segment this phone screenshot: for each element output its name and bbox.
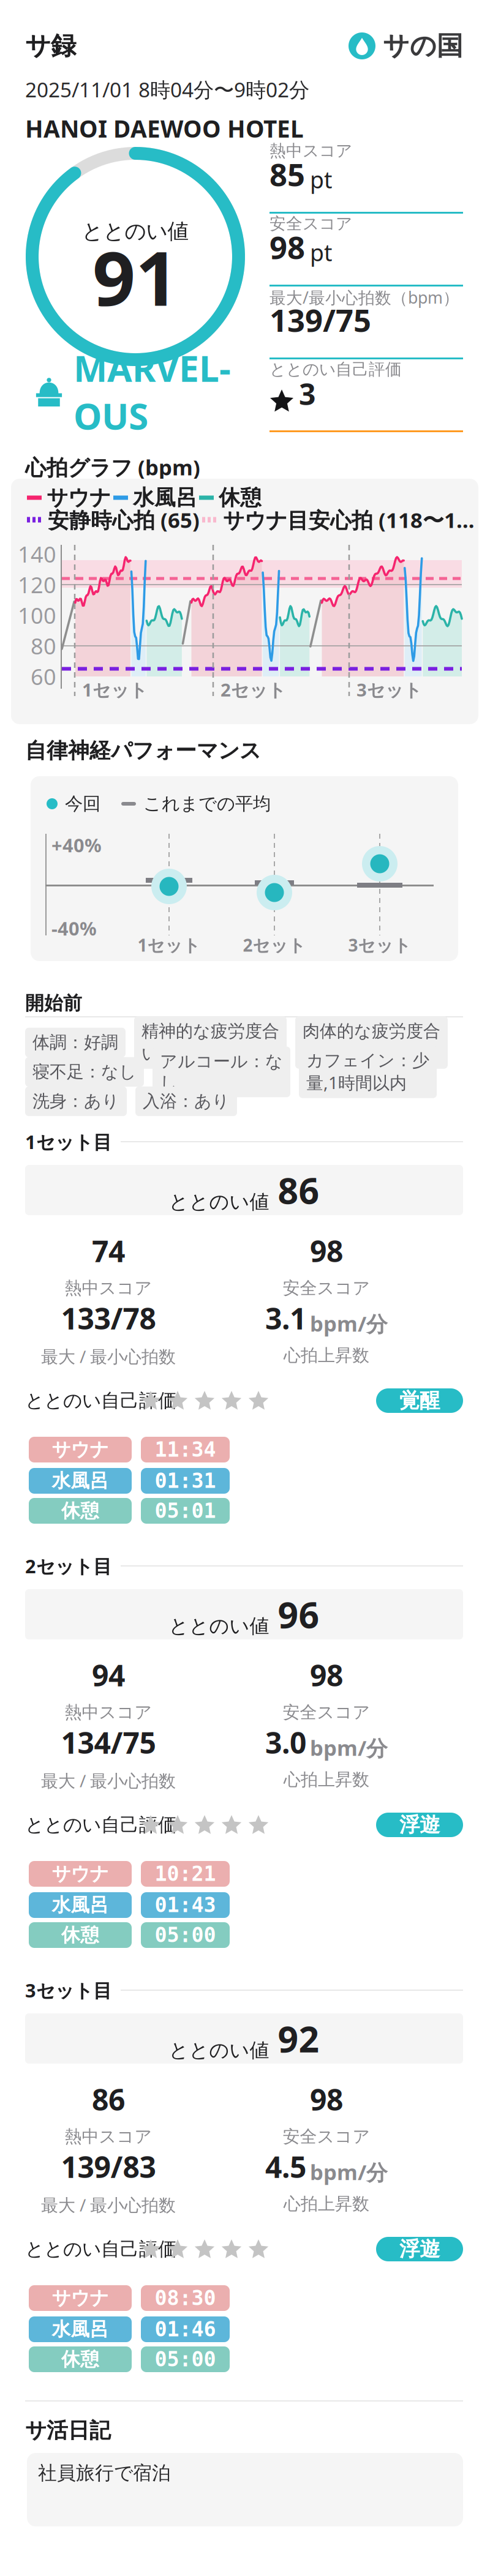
staticText: -40% (51, 916, 97, 941)
staticText: 心拍上昇数 (284, 1345, 369, 1366)
staticText: ととのい値 (169, 2038, 269, 2062)
staticText: 3セット目 (25, 1978, 112, 2003)
staticText: 最大/最小心拍数（bpm） (269, 286, 459, 308)
staticText: サウナ目安心拍 (118〜1… (223, 506, 475, 534)
staticText: 134/75 (61, 1723, 156, 1762)
staticText: ととのい自己評価 (269, 359, 402, 379)
staticText: 最大 / 最小心拍数 (41, 1769, 176, 1792)
staticText: 08:30 (155, 2287, 216, 2310)
staticText: ととのい値 (169, 1614, 269, 1638)
button[interactable]: 浮遊 (376, 1813, 463, 1837)
staticText: 05:00 (155, 2348, 216, 2371)
staticText: 熱中スコア (65, 1702, 152, 1723)
staticText: 安全スコア (269, 214, 352, 234)
staticText: 74 (92, 1231, 125, 1270)
staticText: 05:01 (155, 1499, 216, 1522)
staticText: 140 (18, 539, 56, 569)
staticText: +40% (51, 833, 102, 857)
staticText: 2025/11/01 8時04分〜9時02分 (25, 76, 309, 103)
staticText: 熱中スコア (269, 141, 352, 161)
staticText: 100 (18, 601, 56, 630)
staticText: 2セット (221, 678, 286, 702)
button[interactable]: 浮遊 (376, 2237, 463, 2261)
staticText: 安全スコア (283, 1278, 370, 1299)
staticText: 120 (18, 570, 56, 599)
staticText: 05:00 (155, 1923, 216, 1947)
staticText: 休憩 (61, 1499, 99, 1522)
staticText: 1セット (82, 678, 148, 702)
staticText: 10:21 (155, 1862, 216, 1885)
staticText: 浮遊 (399, 2237, 440, 2262)
staticText: 体調：好調 (32, 1032, 118, 1053)
staticText: 91 (92, 227, 178, 327)
staticText: 浮遊 (399, 1812, 440, 1837)
staticText: 139/83 (61, 2147, 156, 2186)
staticText: 1セット目 (25, 1129, 112, 1154)
staticText: 139/75 (269, 299, 371, 340)
staticText: これまでの平均 (143, 793, 271, 815)
staticText: 最大 / 最小心拍数 (41, 2193, 176, 2216)
staticText: ととのい値 (169, 1190, 269, 1214)
staticText: 心拍上昇数 (284, 2193, 369, 2214)
staticText: サウナ (52, 2287, 109, 2310)
staticText: bpm/分 (310, 1734, 388, 1762)
staticText: 94 (92, 1655, 125, 1694)
staticText: 3.1 (265, 1299, 306, 1338)
staticText: ととのい自己評価 (25, 1813, 177, 1836)
staticText: 最大 / 最小心拍数 (41, 1345, 176, 1368)
staticText: 水風呂 (52, 1469, 109, 1492)
staticText: 自律神経パフォーマンス (25, 738, 261, 764)
staticText: 86 (278, 1166, 319, 1214)
staticText: 60 (31, 662, 56, 691)
staticText: 休憩 (61, 2348, 99, 2371)
staticText: 2セット目 (25, 1553, 112, 1578)
staticText: 92 (278, 2015, 319, 2062)
staticText: 11:34 (155, 1438, 216, 1461)
staticText: 2セット (243, 934, 306, 956)
staticText: 3 (299, 374, 315, 413)
staticText: 1セット (138, 934, 201, 956)
staticText: 133/78 (61, 1299, 156, 1338)
staticText: 85 (269, 153, 305, 195)
staticText: 水風呂 (133, 485, 197, 511)
staticText: カフェイン：少量,1時間以内 (306, 1050, 429, 1094)
staticText: 01:31 (155, 1469, 216, 1492)
staticText: 98 (310, 1231, 343, 1270)
staticText: bpm/分 (310, 1309, 388, 1338)
staticText: 熱中スコア (65, 1278, 152, 1299)
staticText: 4.5 (265, 2147, 306, 2186)
staticText: 肉体的な疲労度合い：3 (303, 1021, 440, 1064)
staticText: サ活日記 (25, 2417, 111, 2444)
staticText: 社員旅行で宿泊 (38, 2462, 171, 2485)
staticText: 86 (92, 2080, 125, 2119)
staticText: pt (310, 237, 332, 268)
staticText: 安静時心拍 (65) (48, 506, 200, 534)
staticText: 心拍グラフ (bpm) (25, 453, 200, 481)
staticText: サウナ (52, 1438, 109, 1461)
staticText: 休憩 (61, 1924, 99, 1947)
staticText: 覚醒 (399, 1388, 440, 1413)
staticText: サウナ (47, 485, 111, 511)
staticText: 休憩 (219, 485, 262, 511)
staticText: 開始前 (25, 992, 82, 1015)
staticText: 精神的な疲労度合い：3 (141, 1021, 279, 1064)
staticText: ととのい値 (82, 218, 189, 244)
staticText: 水風呂 (52, 2318, 109, 2341)
staticText: 98 (269, 226, 305, 268)
button[interactable]: 覚醒 (376, 1388, 463, 1413)
staticText: 3セット (348, 934, 411, 956)
staticText: ととのい自己評価 (25, 1389, 177, 1412)
staticText: 安全スコア (283, 1702, 370, 1723)
staticText: 3セット (356, 678, 422, 702)
staticText: MARVELOUS (73, 344, 231, 439)
staticText: アルコール：なし (160, 1051, 283, 1093)
staticText: ととのい自己評価 (25, 2238, 177, 2261)
staticText: 安全スコア (283, 2126, 370, 2147)
staticText: 98 (310, 1655, 343, 1694)
staticText: 入浴：あり (143, 1091, 230, 1112)
staticText: pt (310, 164, 332, 195)
staticText: 96 (278, 1590, 319, 1638)
staticText: 心拍上昇数 (284, 1769, 369, 1790)
staticText: bpm/分 (310, 2158, 388, 2186)
staticText: サ録 (25, 30, 76, 61)
